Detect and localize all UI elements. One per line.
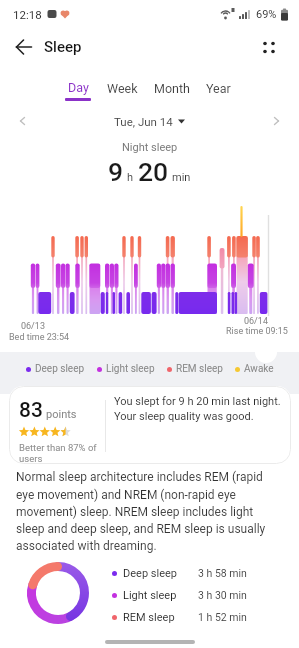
button[interactable]: Day <box>65 80 91 101</box>
staticText: Tue, Jun 14 <box>114 115 173 128</box>
staticText: h <box>127 171 134 184</box>
staticText: REM sleep <box>176 363 223 375</box>
staticText: Deep sleep <box>35 363 85 375</box>
button[interactable]: Year <box>206 81 231 101</box>
staticText: 83 <box>19 398 43 423</box>
button[interactable] <box>8 31 40 63</box>
staticText: 9 <box>108 156 124 187</box>
staticText: 20 <box>138 156 169 187</box>
button[interactable]: Week <box>107 81 138 101</box>
staticText: Light sleep <box>123 589 177 602</box>
staticText: 12:18 <box>13 8 42 21</box>
staticText: Rise time 09:15 <box>226 326 288 337</box>
staticText: Day <box>68 80 89 95</box>
button[interactable] <box>12 110 34 132</box>
staticText: 69% <box>256 8 277 21</box>
staticText: Sleep <box>44 38 82 56</box>
button[interactable]: 83 <box>9 386 291 464</box>
staticText: Better than 87% of users <box>19 442 97 464</box>
staticText: 3 h 58 min <box>198 567 247 579</box>
staticText: Normal sleep architecture includes REM (… <box>16 470 266 553</box>
staticText: Deep sleep <box>123 567 177 580</box>
staticText: 06/13 <box>21 321 45 332</box>
button[interactable] <box>265 110 287 132</box>
button[interactable]: Month <box>154 81 190 101</box>
button[interactable] <box>255 33 283 61</box>
staticText: 3 h 30 min <box>198 589 247 601</box>
staticText: Night sleep <box>122 141 178 154</box>
staticText: Light sleep <box>106 363 155 375</box>
staticText: min <box>172 171 191 184</box>
button[interactable]: Tue, Jun 14 <box>114 115 185 128</box>
staticText: Awake <box>244 363 274 375</box>
staticText: Bed time 23:54 <box>9 332 70 343</box>
staticText: 06/14 <box>244 316 268 327</box>
staticText: 1 h 52 min <box>198 611 247 623</box>
staticText: REM sleep <box>123 611 175 624</box>
staticText: You slept for 9 h 20 min last night. You… <box>114 395 286 423</box>
staticText: points <box>46 408 77 421</box>
